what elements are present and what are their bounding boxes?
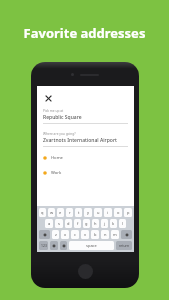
button[interactable]: k (110, 219, 117, 228)
staticText: z (55, 232, 57, 237)
button[interactable]: c (71, 230, 79, 239)
button[interactable]: Backspace (121, 230, 132, 239)
button[interactable]: l (119, 219, 126, 228)
button[interactable]: o (114, 208, 122, 217)
button[interactable]: Emoji (50, 241, 58, 250)
button[interactable]: g (83, 219, 90, 228)
button[interactable]: Shift (39, 230, 50, 239)
staticText: r (69, 210, 71, 215)
button[interactable]: s (55, 219, 63, 228)
staticText: l (122, 221, 124, 226)
button[interactable]: q (39, 208, 46, 217)
button[interactable]: x (61, 230, 69, 239)
button[interactable]: space (69, 241, 114, 250)
staticText: v (84, 232, 87, 237)
staticText: e (59, 210, 62, 215)
staticText: d (67, 221, 70, 226)
button[interactable]: u (94, 208, 102, 217)
button[interactable]: b (91, 230, 99, 239)
staticText: n (104, 232, 107, 237)
staticText: o (117, 210, 120, 215)
staticText: q (41, 210, 44, 215)
staticText: k (112, 221, 115, 226)
button[interactable]: Work (43, 170, 128, 176)
button[interactable]: i (104, 208, 112, 217)
staticText: Pick me up at (43, 109, 64, 113)
button[interactable]: v (81, 230, 89, 239)
staticText: m (113, 232, 117, 237)
staticText: i (107, 210, 109, 215)
button[interactable]: r (66, 208, 73, 217)
button[interactable]: t (75, 208, 82, 217)
button[interactable]: y (84, 208, 92, 217)
button[interactable]: z (52, 230, 59, 239)
staticText: w (50, 210, 54, 215)
button[interactable]: d (65, 219, 72, 228)
staticText: s (58, 221, 60, 226)
staticText: c (74, 232, 76, 237)
staticText: Zvartnots International Airport (43, 137, 117, 144)
staticText: Work (51, 170, 62, 176)
button[interactable]: m (111, 230, 119, 239)
staticText: space (86, 243, 97, 248)
button[interactable]: 123 (39, 241, 48, 250)
button[interactable]: a (45, 219, 53, 228)
staticText: t (78, 210, 80, 215)
staticText: f (77, 221, 79, 226)
button[interactable]: f (74, 219, 81, 228)
staticText: h (94, 221, 97, 226)
button[interactable]: j (101, 219, 108, 228)
button[interactable]: return (116, 241, 132, 250)
button[interactable]: Close (43, 93, 54, 104)
button[interactable]: e (57, 208, 64, 217)
button[interactable]: Where are you going? (43, 132, 128, 147)
button[interactable]: Pick me up at (43, 109, 128, 124)
button[interactable]: w (48, 208, 55, 217)
staticText: 123 (41, 243, 47, 248)
staticText: Favorite addresses (0, 24, 169, 42)
button[interactable]: n (101, 230, 109, 239)
staticText: y (87, 210, 90, 215)
button[interactable]: h (92, 219, 99, 228)
staticText: u (97, 210, 100, 215)
staticText: b (94, 232, 97, 237)
staticText: g (85, 221, 88, 226)
staticText: return (119, 243, 130, 248)
button[interactable]: p (124, 208, 132, 217)
staticText: Home (51, 155, 63, 161)
button[interactable]: Dictate (60, 241, 67, 250)
button[interactable]: Home (43, 155, 128, 161)
staticText: x (64, 232, 67, 237)
staticText: j (104, 221, 106, 226)
staticText: a (48, 221, 51, 226)
button[interactable]: Home (78, 264, 93, 279)
staticText: Where are you going? (43, 132, 76, 136)
staticText: Republic Square (43, 114, 82, 121)
staticText: p (127, 210, 130, 215)
